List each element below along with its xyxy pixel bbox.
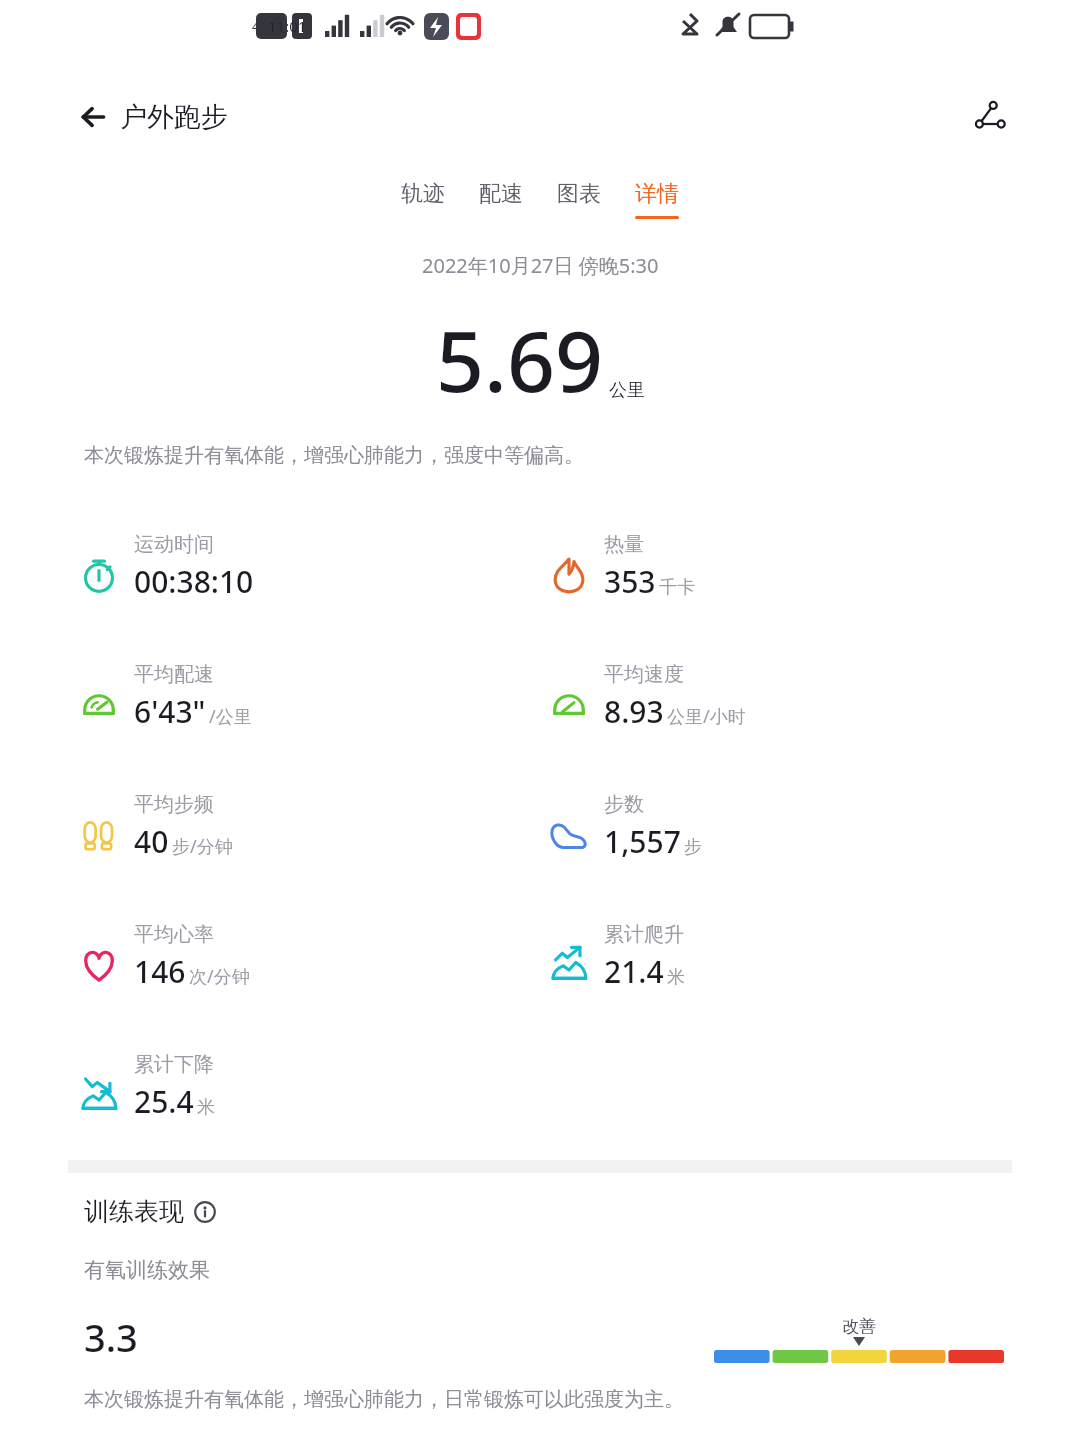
staticText: 5.69 xyxy=(436,302,603,416)
staticText: 配速 xyxy=(479,180,523,208)
staticText: 轨迹 xyxy=(401,180,445,208)
staticText: 户外跑步 xyxy=(120,100,228,134)
button[interactable]: 热量 xyxy=(548,532,695,602)
button[interactable]: 累计爬升 xyxy=(548,922,685,992)
staticText: 公里/小时 xyxy=(667,704,746,729)
staticText: /公里 xyxy=(209,704,252,729)
button[interactable]: 图表 xyxy=(540,178,618,221)
staticText: 46 xyxy=(252,19,265,34)
staticText: 公里 xyxy=(609,379,645,402)
staticText: 步 xyxy=(684,836,702,859)
staticText: 热量 xyxy=(604,532,644,557)
staticText: 改善 xyxy=(842,1316,876,1337)
other: Info xyxy=(194,1201,216,1223)
staticText: 平均心率 xyxy=(134,922,214,947)
button[interactable]: 平均步频 xyxy=(78,792,233,862)
button[interactable]: 配速 xyxy=(462,178,540,221)
button[interactable]: 平均心率 xyxy=(78,922,250,992)
staticText: 累计爬升 xyxy=(604,922,684,947)
staticText: 平均配速 xyxy=(134,662,214,687)
staticText: 8.93 xyxy=(604,691,664,732)
staticText: 146 xyxy=(134,951,186,992)
staticText: 训练表现 xyxy=(84,1196,184,1227)
button[interactable]: Share xyxy=(964,90,1016,142)
button[interactable]: 步数 xyxy=(548,792,702,862)
staticText: 1,557 xyxy=(604,821,681,862)
staticText: 25.4 xyxy=(134,1081,194,1122)
staticText: 详情 xyxy=(635,180,679,208)
staticText: 千卡 xyxy=(659,576,695,599)
staticText: 40 xyxy=(134,821,169,862)
staticText: 有氧训练效果 xyxy=(84,1257,210,1283)
staticText: 353 xyxy=(604,561,656,602)
staticText: 步/分钟 xyxy=(172,834,233,859)
staticText: 6'43" xyxy=(134,691,206,732)
button[interactable]: 累计下降 xyxy=(78,1052,215,1122)
staticText: 次/分钟 xyxy=(189,964,250,989)
staticText: 米 xyxy=(197,1096,215,1119)
staticText: 运动时间 xyxy=(134,532,214,557)
button[interactable]: 详情 xyxy=(618,178,696,221)
staticText: 3.3 xyxy=(84,1311,138,1363)
button[interactable]: 训练表现 xyxy=(84,1196,216,1227)
staticText: 平均步频 xyxy=(134,792,214,817)
button[interactable]: 平均速度 xyxy=(548,662,746,732)
button[interactable]: Back xyxy=(74,94,236,140)
staticText: 本次锻炼提升有氧体能，增强心肺能力，强度中等偏高。 xyxy=(84,443,584,468)
other: Back xyxy=(82,106,104,128)
staticText: 步数 xyxy=(604,792,644,817)
staticText: 平均速度 xyxy=(604,662,684,687)
button[interactable]: 运动时间 xyxy=(78,532,254,602)
staticText: 图表 xyxy=(557,180,601,208)
staticText: 21.4 xyxy=(604,951,664,992)
staticText: 2022年10月27日 傍晚5:30 xyxy=(422,252,659,279)
staticText: 11:01 xyxy=(268,16,307,36)
staticText: 00:38:10 xyxy=(134,561,254,602)
staticText: 累计下降 xyxy=(134,1052,214,1077)
staticText: 本次锻炼提升有氧体能，增强心肺能力，日常锻炼可以此强度为主。 xyxy=(84,1387,684,1412)
button[interactable]: 轨迹 xyxy=(384,178,462,221)
staticText: 米 xyxy=(667,966,685,989)
button[interactable]: 平均配速 xyxy=(78,662,252,732)
